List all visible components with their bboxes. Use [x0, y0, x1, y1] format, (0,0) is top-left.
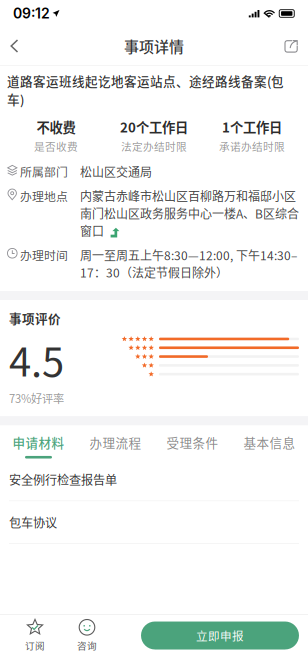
- staticText: 09:12: [13, 5, 50, 22]
- button[interactable]: 申请材料: [0, 425, 77, 458]
- staticText: 咨询: [77, 638, 97, 652]
- button[interactable]: 基本信息: [231, 425, 308, 458]
- staticText: 承诺办结时限: [219, 138, 285, 154]
- staticText: 办理流程: [89, 433, 141, 451]
- staticText: 所属部门: [20, 163, 68, 180]
- button[interactable]: 立即申报: [141, 621, 299, 649]
- staticText: 1个工作日: [222, 117, 282, 136]
- staticText: 法定办结时限: [121, 138, 187, 154]
- staticText: 办理地点: [20, 187, 68, 204]
- staticText: 周一至周五上午8:30—12:00, 下午14:30–17：30（法定节假日除外…: [80, 246, 297, 281]
- staticText: 办理时间: [20, 246, 68, 263]
- staticText: 73%好评率: [9, 390, 64, 406]
- button[interactable]: 安全例行检查报告单: [0, 458, 308, 501]
- staticText: 基本信息: [243, 433, 295, 451]
- staticText: 20个工作日: [120, 117, 188, 136]
- staticText: 事项评价: [9, 309, 61, 327]
- button[interactable]: 受理条件: [154, 425, 231, 458]
- button[interactable]: 订阅: [9, 615, 61, 656]
- button[interactable]: 咨询: [61, 615, 113, 656]
- button[interactable]: 办理流程: [77, 425, 154, 458]
- staticText: 受理条件: [166, 433, 218, 451]
- staticText: 松山区交通局: [80, 163, 152, 180]
- staticText: 内蒙古赤峰市松山区百柳路万和福邸小区南门松山区政务服务中心一楼A、B区综合窗口: [80, 187, 299, 239]
- button[interactable]: 分享: [264, 31, 308, 61]
- staticText: 立即申报: [196, 627, 244, 644]
- staticText: 道路客运班线起讫地客运站点、途经路线备案(包车): [7, 72, 284, 108]
- button[interactable]: 包车协议: [0, 501, 308, 544]
- staticText: 申请材料: [12, 433, 64, 451]
- button[interactable]: 返回: [0, 31, 44, 61]
- staticText: 订阅: [25, 638, 45, 652]
- staticText: 不收费: [36, 117, 75, 136]
- staticText: 是否收费: [34, 138, 78, 154]
- staticText: 事项详情: [124, 35, 184, 57]
- staticText: 包车协议: [9, 513, 57, 531]
- staticText: 安全例行检查报告单: [9, 471, 117, 488]
- staticText: 4.5: [9, 330, 64, 388]
